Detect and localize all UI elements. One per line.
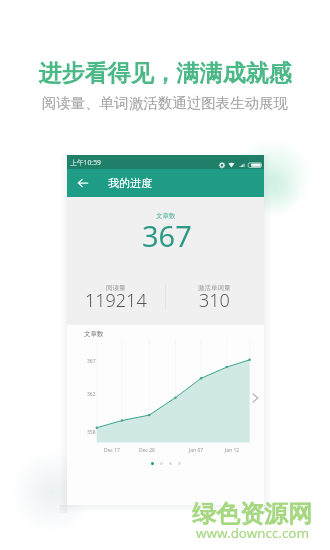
staticText: 文章数 (156, 212, 176, 220)
button[interactable]: Next chart (249, 392, 261, 404)
staticText: 310 (199, 288, 230, 313)
staticText: 阅读量、单词激活数通过图表生动展现 (0, 94, 330, 112)
staticText: 我的进度 (108, 176, 152, 190)
staticText: www.downcc.com (196, 524, 309, 542)
staticText: 367 (142, 216, 192, 255)
staticText: 358 (87, 429, 96, 436)
staticText: Dec 26 (133, 447, 161, 454)
staticText: Jan 12 (218, 447, 246, 454)
staticText: 进步看得见，满满成就感 (0, 59, 330, 88)
staticText: 119214 (85, 288, 147, 313)
staticText: 362 (87, 391, 96, 398)
staticText: 阅读量 (106, 284, 126, 292)
staticText: 367 (87, 358, 96, 365)
button[interactable]: Back (75, 175, 91, 191)
staticText: Dec 17 (98, 447, 126, 454)
staticText: Jan 07 (182, 447, 210, 454)
staticText: 上午10:59 (70, 158, 101, 167)
staticText: 绿色资源网 (192, 499, 312, 529)
staticText: 激活单词量 (198, 284, 231, 292)
staticText: 文章数 (84, 330, 104, 338)
